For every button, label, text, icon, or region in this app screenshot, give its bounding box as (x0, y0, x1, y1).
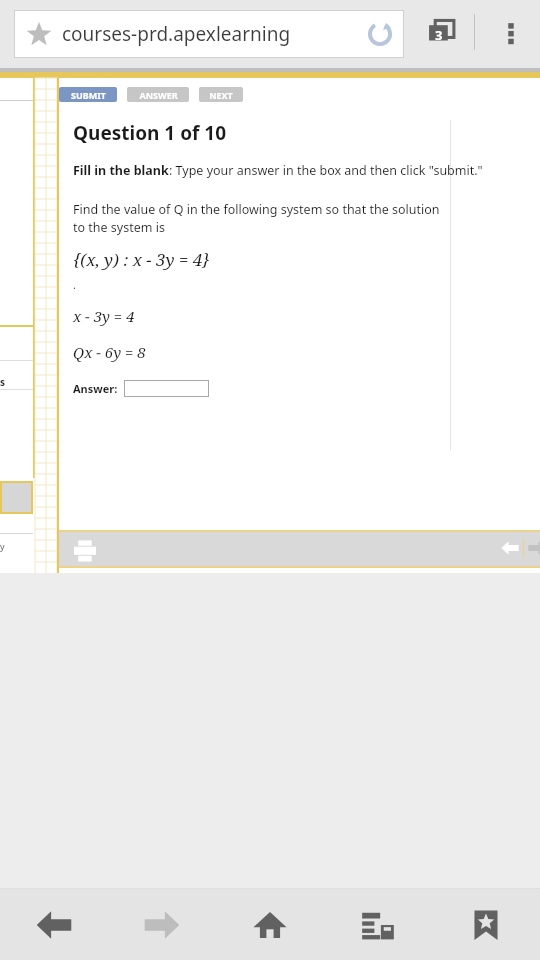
staticText: x − 3y = 4 (73, 306, 135, 326)
staticText: Answer: (73, 381, 118, 396)
staticText: y (0, 540, 5, 552)
staticText: NEXT (209, 89, 233, 101)
button[interactable]: Tabs list (324, 889, 432, 960)
button[interactable]: Answer input (124, 380, 209, 397)
staticText: Find the value of Q in the following sys… (73, 201, 445, 236)
button[interactable]: Next page (524, 535, 540, 561)
button[interactable]: Home (216, 889, 324, 960)
button[interactable]: Forward (108, 889, 216, 960)
button[interactable]: Bookmarks (432, 889, 540, 960)
staticText: ANSWER (139, 89, 178, 101)
staticText: {(x, y) : x − 3y = 4} (73, 248, 210, 271)
button[interactable]: Address bar (14, 10, 404, 58)
staticText: courses-prd.apexlearning (62, 21, 291, 47)
button[interactable]: More options (489, 10, 533, 54)
staticText: Fill in the blank (73, 162, 169, 179)
button[interactable]: Reload (360, 14, 400, 54)
button[interactable]: Print (68, 534, 102, 568)
button[interactable]: ANSWER (127, 87, 189, 102)
button[interactable]: SUBMIT (59, 87, 117, 102)
button[interactable]: Tabs: 3 open (420, 10, 464, 54)
button[interactable]: Back (0, 889, 108, 960)
button[interactable]: Previous page (497, 535, 523, 561)
staticText: : Type your answer in the box and then c… (169, 162, 483, 179)
staticText: . (73, 277, 76, 292)
staticText: s (0, 375, 6, 389)
staticText: 3 (435, 26, 443, 44)
staticText: Question 1 of 10 (73, 120, 227, 146)
staticText: Qx − 6y = 8 (73, 342, 146, 362)
staticText: SUBMIT (71, 89, 106, 101)
button[interactable]: NEXT (199, 87, 243, 102)
